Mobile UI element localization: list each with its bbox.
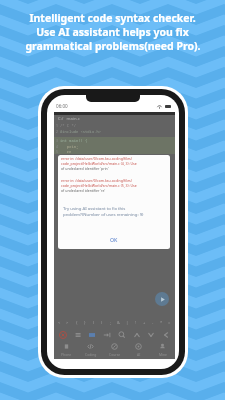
staticText: ; xyxy=(110,320,112,325)
staticText: 5 xyxy=(56,149,60,154)
staticText: { xyxy=(76,320,78,325)
staticText: Use AI assistant helps you fix xyxy=(36,25,189,39)
button[interactable]: Stop xyxy=(57,329,69,341)
staticText: OK xyxy=(110,236,118,243)
staticText: code_project/HelloWorld/src/main.c (5, 3… xyxy=(61,183,137,188)
button[interactable]: = xyxy=(166,317,173,328)
button[interactable]: Next match xyxy=(145,329,157,341)
button[interactable]: | xyxy=(124,317,131,328)
staticText: Try using AI assistant to fix this xyxy=(63,205,126,211)
staticText: + xyxy=(143,320,146,325)
staticText: Mine xyxy=(159,352,167,357)
button[interactable]: AI xyxy=(127,341,150,359)
staticText: 4 xyxy=(56,144,60,149)
staticText: 1 xyxy=(56,123,60,128)
staticText: - xyxy=(152,320,154,325)
staticText: AI xyxy=(137,352,141,357)
staticText: 06:00 xyxy=(56,103,68,109)
staticText: & xyxy=(117,320,120,325)
staticText: = xyxy=(168,320,171,325)
staticText: Phone xyxy=(61,352,72,357)
button[interactable]: Search xyxy=(116,329,128,341)
button[interactable]: < xyxy=(56,317,63,328)
staticText: * xyxy=(160,320,163,325)
staticText: 2 xyxy=(56,129,60,134)
staticText: | xyxy=(126,320,129,325)
staticText: grammatical problems(need Pro). xyxy=(25,39,201,53)
staticText: error in: /data/user/0/com.ksu.coding/fi… xyxy=(61,156,133,161)
staticText: re xyxy=(60,149,72,154)
staticText: /* C */ xyxy=(60,123,76,128)
button[interactable]: Phone xyxy=(55,341,78,359)
staticText: of undeclared identifier 're' xyxy=(61,188,106,193)
staticText: Intelligent code syntax checker. xyxy=(29,11,196,25)
staticText: > xyxy=(66,320,69,325)
staticText: < xyxy=(58,320,61,325)
button[interactable]: > xyxy=(64,317,71,328)
staticText: problem?(Number of uses remaining: 9) xyxy=(63,211,144,217)
button[interactable]: Back xyxy=(160,329,172,341)
staticText: ( xyxy=(93,320,95,325)
button[interactable]: OK xyxy=(58,230,170,249)
button[interactable]: Run xyxy=(155,292,169,306)
staticText: C:/ main.c xyxy=(58,116,80,122)
button[interactable]: * xyxy=(158,317,165,328)
button[interactable]: Tab xyxy=(101,329,113,341)
button[interactable]: Coding xyxy=(79,341,102,359)
button[interactable]: Mine xyxy=(151,341,174,359)
button[interactable]: ) xyxy=(98,317,105,328)
staticText: Course xyxy=(109,352,121,357)
button[interactable]: & xyxy=(115,317,122,328)
staticText: 3 xyxy=(56,138,60,143)
staticText: code_project/HelloWorld/src/main.c (4, 3… xyxy=(61,161,137,166)
button[interactable]: { xyxy=(73,317,80,328)
staticText: ) xyxy=(101,320,103,325)
button[interactable]: Course xyxy=(103,341,126,359)
button[interactable]: ( xyxy=(90,317,97,328)
button[interactable]: Outline xyxy=(72,329,84,341)
staticText: int main() { xyxy=(60,138,88,143)
staticText: of undeclared identifier 'prin' xyxy=(61,166,109,171)
button[interactable]: Keyboard xyxy=(86,329,98,341)
staticText: Coding xyxy=(85,352,97,357)
staticText: prin; xyxy=(60,144,79,149)
staticText: ! xyxy=(135,320,137,325)
button[interactable]: } xyxy=(81,317,88,328)
staticText: error in: /data/user/0/com.ksu.coding/fi… xyxy=(61,178,133,183)
button[interactable]: ! xyxy=(132,317,139,328)
button[interactable]: + xyxy=(141,317,148,328)
button[interactable]: Previous match xyxy=(131,329,143,341)
staticText: #include <stdio.h> xyxy=(60,129,102,134)
staticText: } xyxy=(84,320,86,325)
